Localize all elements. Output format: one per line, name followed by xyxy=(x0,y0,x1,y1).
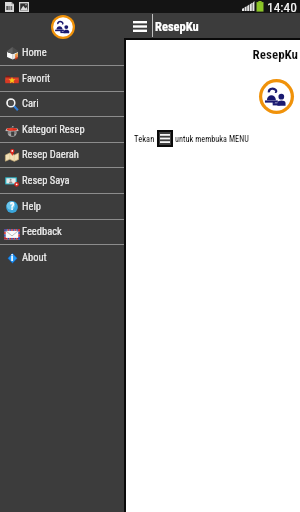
staticText: Resep Daerah xyxy=(22,148,79,160)
button[interactable]: Home xyxy=(0,40,124,66)
button[interactable]: Open navigation menu xyxy=(127,15,152,37)
staticText: ResepKu xyxy=(155,19,199,34)
staticText: Help xyxy=(22,200,42,212)
button[interactable]: Kategori Resep xyxy=(0,117,124,143)
button[interactable]: Cari xyxy=(0,91,124,117)
button[interactable]: ? xyxy=(0,194,124,220)
staticText: Tekan xyxy=(134,134,155,144)
button[interactable]: Feedback xyxy=(0,219,124,245)
button[interactable]: Resep Daerah xyxy=(0,142,124,168)
staticText: Cari xyxy=(22,97,39,109)
staticText: Home xyxy=(22,46,47,58)
staticText: ResepKu xyxy=(126,47,298,62)
staticText: untuk membuka MENU xyxy=(175,134,249,144)
staticText: About xyxy=(22,251,47,263)
staticText: ? xyxy=(10,201,15,213)
staticText: Feedback xyxy=(22,225,62,237)
button[interactable]: Resep Saya xyxy=(0,168,124,194)
button[interactable]: i xyxy=(0,245,124,271)
staticText: 14:40 xyxy=(267,0,297,12)
staticText: Kategori Resep xyxy=(22,123,85,135)
staticText: i xyxy=(11,253,14,264)
button[interactable]: Favorit xyxy=(0,66,124,92)
staticText: Resep Saya xyxy=(22,174,70,186)
staticText: Favorit xyxy=(22,72,51,84)
